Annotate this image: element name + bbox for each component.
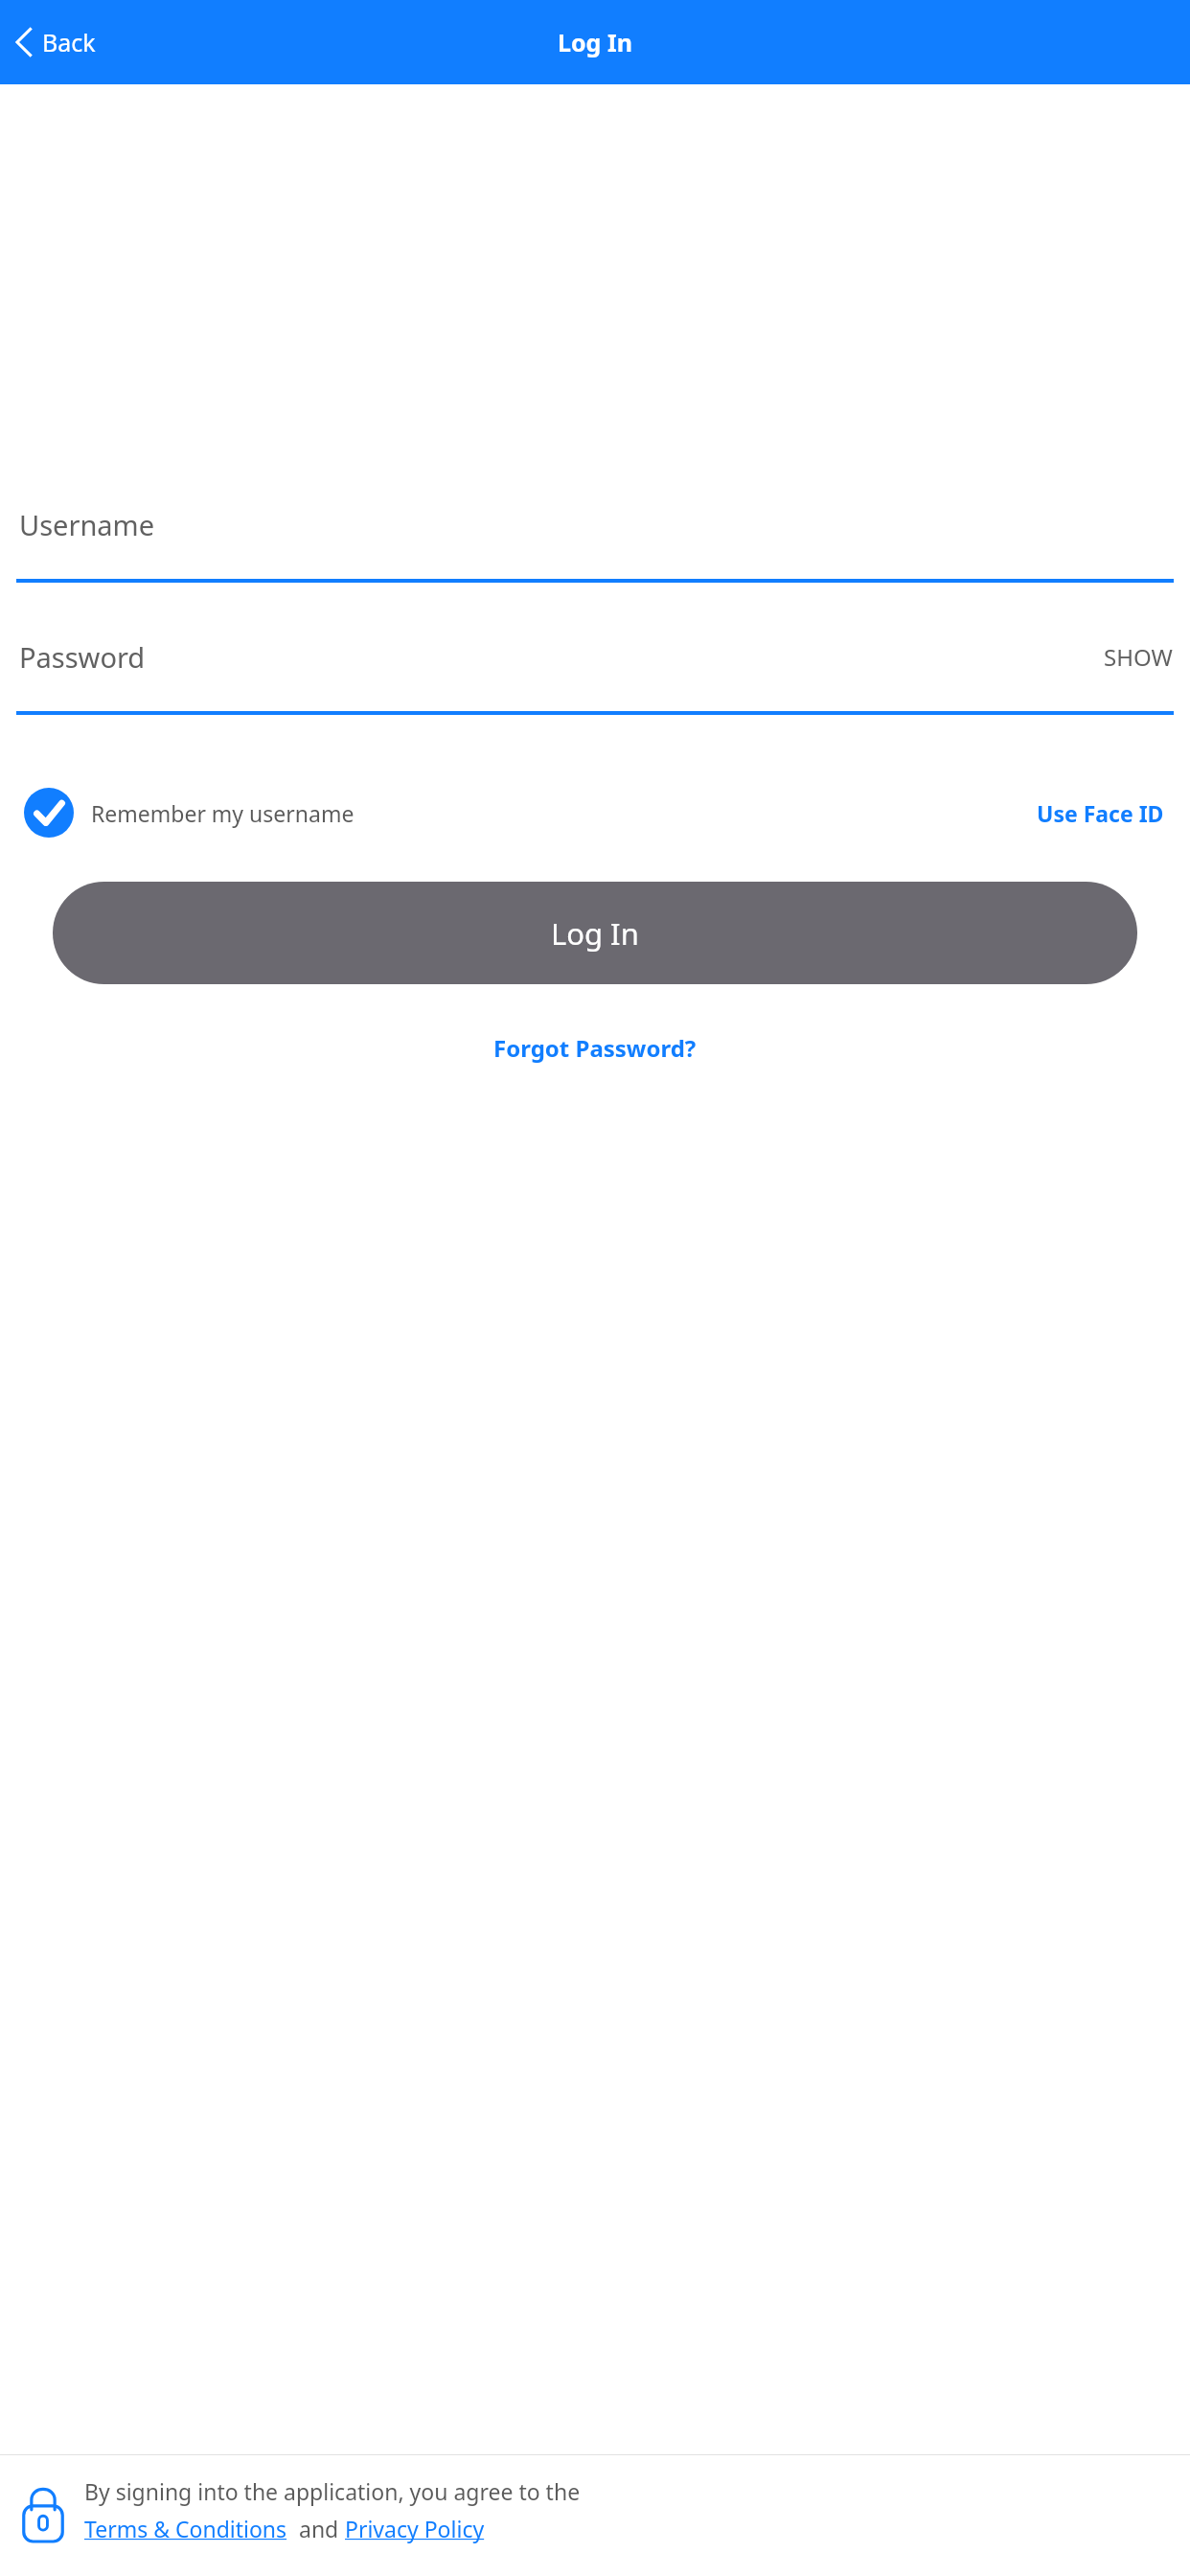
staticText: and	[293, 2514, 345, 2543]
staticText: Log In	[558, 26, 632, 58]
staticText: Back	[42, 26, 96, 58]
staticText: Log In	[551, 913, 639, 954]
staticText: Use Face ID	[1037, 798, 1164, 828]
button[interactable]: Log In	[53, 882, 1137, 984]
button[interactable]: Password	[0, 638, 1190, 715]
staticText: SHOW	[1104, 641, 1173, 673]
button[interactable]: Username	[0, 506, 1190, 583]
staticText: Remember my username	[91, 798, 355, 828]
button[interactable]: Forgot Password?	[478, 1023, 712, 1073]
button[interactable]: Use Face ID	[1035, 793, 1166, 834]
staticText: By signing into the application, you agr…	[84, 2476, 581, 2506]
staticText: Terms & Conditions	[84, 2514, 293, 2543]
button[interactable]: Back	[8, 20, 102, 64]
staticText: Privacy Policy	[345, 2514, 491, 2543]
button[interactable]: Privacy Policy	[345, 2514, 491, 2543]
staticText: Password	[19, 638, 146, 676]
staticText: Forgot Password?	[493, 1032, 697, 1064]
button[interactable]: Terms & Conditions	[84, 2514, 293, 2543]
staticText: Username	[19, 506, 155, 543]
button[interactable]: Remember my username	[24, 784, 355, 841]
